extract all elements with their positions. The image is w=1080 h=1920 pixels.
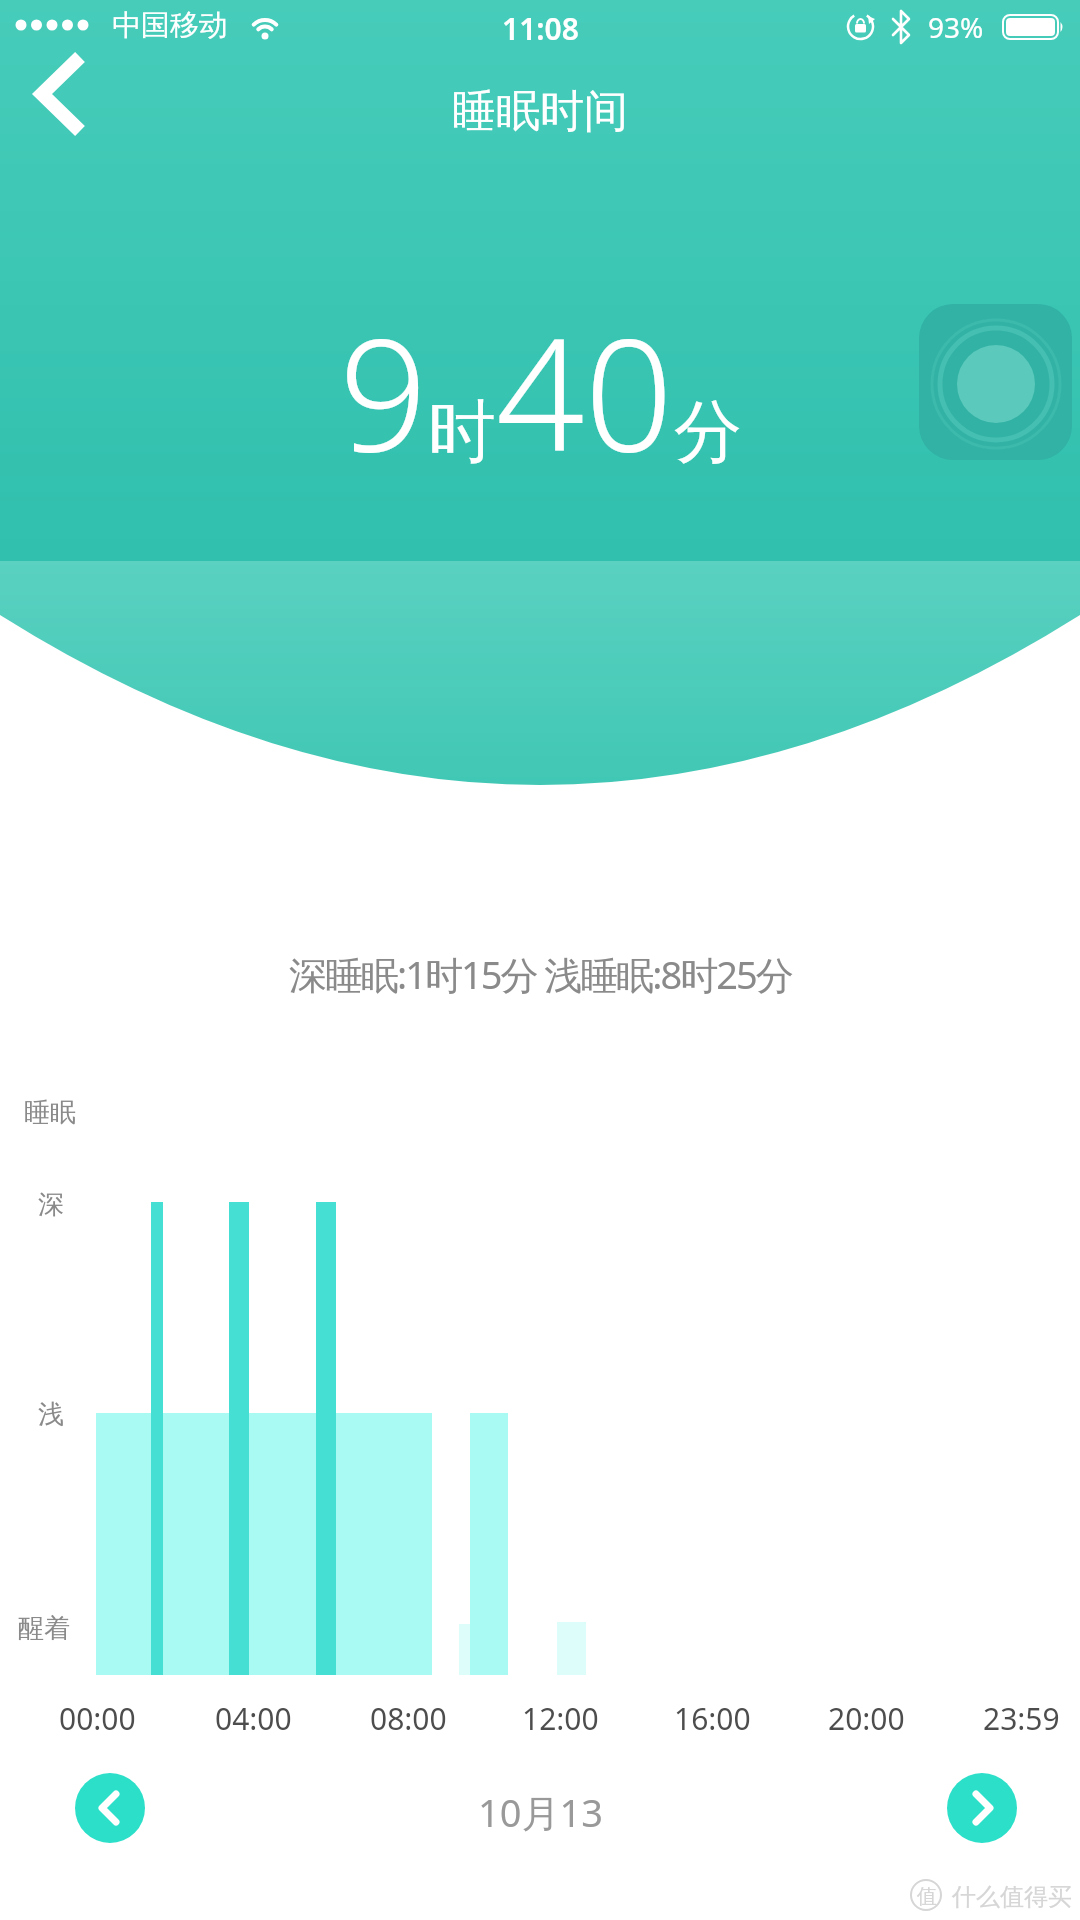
staticText: 浅: [38, 1398, 64, 1431]
staticText: 深: [38, 1188, 64, 1221]
button[interactable]: [947, 1773, 1017, 1843]
staticText: 04:00: [215, 1698, 292, 1739]
staticText: 40: [496, 285, 674, 496]
staticText: 9: [339, 285, 428, 496]
button[interactable]: [919, 304, 1072, 460]
staticText: 睡眠: [24, 1096, 76, 1129]
staticText: 醒着: [18, 1612, 70, 1645]
staticText: 11:08: [502, 8, 579, 49]
staticText: 分: [674, 390, 742, 476]
staticText: 10月13: [478, 1786, 603, 1838]
staticText: 值: [917, 1884, 937, 1909]
staticText: 12:00: [522, 1698, 599, 1739]
staticText: 93%: [928, 8, 984, 46]
button[interactable]: [20, 45, 120, 145]
staticText: 08:00: [370, 1698, 447, 1739]
staticText: 20:00: [828, 1698, 905, 1739]
button[interactable]: [75, 1773, 145, 1843]
staticText: 睡眠时间: [452, 84, 628, 139]
staticText: 时: [428, 390, 496, 476]
staticText: 16:00: [674, 1698, 751, 1739]
staticText: 什么值得买: [952, 1882, 1072, 1912]
staticText: 00:00: [59, 1698, 136, 1739]
staticText: 23:59: [983, 1698, 1060, 1739]
staticText: 深睡眠:1时15分 浅睡眠:8时25分: [289, 948, 792, 1000]
staticText: 中国移动: [112, 7, 228, 44]
